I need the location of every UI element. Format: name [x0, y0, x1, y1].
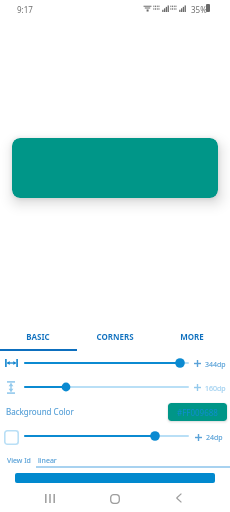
- staticText: MORE: [180, 331, 204, 342]
- staticText: CORNERS: [96, 331, 134, 342]
- button[interactable]: #FF009688: [168, 403, 227, 421]
- button[interactable]: CORNERS: [76, 328, 153, 344]
- staticText: 9:17: [17, 4, 33, 15]
- staticText: #FF009688: [177, 407, 218, 418]
- staticText: View Id: [7, 456, 31, 466]
- button[interactable]: Slider: [0, 379, 230, 395]
- button[interactable]: Slider: [0, 428, 230, 444]
- button[interactable]: Slider: [0, 355, 230, 371]
- button[interactable]: Increase: [191, 381, 203, 393]
- button[interactable]: MORE: [153, 328, 230, 344]
- button[interactable]: Increase: [192, 431, 204, 443]
- staticText: BASIC: [26, 331, 50, 342]
- button[interactable]: Home: [98, 482, 131, 512]
- staticText: Background Color: [6, 406, 74, 417]
- button[interactable]: Toggle: [1, 427, 21, 447]
- staticText: 160dp: [205, 384, 226, 394]
- button[interactable]: linear: [36, 452, 230, 468]
- staticText: 24dp: [206, 433, 223, 443]
- button[interactable]: Width: [3, 354, 20, 372]
- button[interactable]: Recents: [34, 482, 66, 512]
- button[interactable]: [12, 138, 218, 198]
- button[interactable]: BASIC: [0, 328, 76, 344]
- button[interactable]: Height: [2, 378, 19, 396]
- staticText: 344dp: [205, 360, 226, 370]
- button[interactable]: Increase: [191, 357, 203, 369]
- staticText: linear: [38, 456, 57, 466]
- button[interactable]: [15, 473, 215, 483]
- button[interactable]: Back: [163, 482, 195, 512]
- staticText: 35%: [191, 4, 207, 15]
